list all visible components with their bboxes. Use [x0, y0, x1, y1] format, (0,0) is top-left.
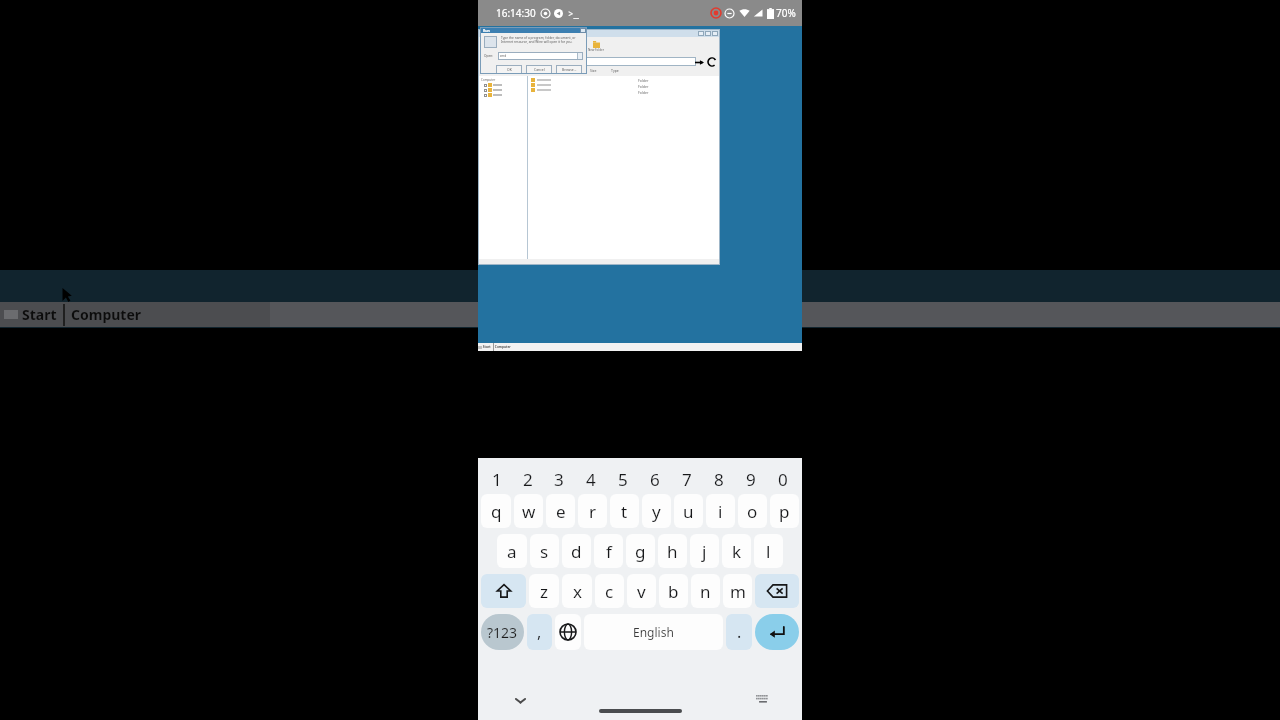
staticText: o — [747, 500, 758, 523]
staticText: Size — [590, 68, 597, 73]
staticText: Folder — [638, 78, 649, 83]
button[interactable]: Home — [599, 709, 682, 713]
staticText: Browse... — [562, 67, 577, 72]
staticText: Start — [482, 345, 491, 349]
staticText: m — [730, 580, 746, 603]
staticText: y — [652, 500, 661, 523]
button[interactable]: j — [690, 534, 719, 568]
staticText: 8 — [714, 468, 724, 491]
staticText: English — [633, 624, 674, 640]
staticText: 16:14:30 — [496, 6, 536, 20]
button[interactable]: h — [658, 534, 687, 568]
button[interactable]: Enter — [755, 614, 799, 650]
staticText: d — [571, 540, 582, 563]
button[interactable]: g — [626, 534, 655, 568]
button[interactable]: Shift — [481, 574, 526, 608]
button[interactable]: l — [754, 534, 783, 568]
button[interactable]: OK — [496, 65, 522, 74]
button[interactable]: a — [497, 534, 527, 568]
staticText: Open: — [484, 54, 494, 58]
staticText: n — [700, 580, 711, 603]
button[interactable]: Backspace — [755, 574, 799, 608]
staticText: Start — [22, 305, 57, 324]
staticText: Type — [611, 68, 619, 73]
staticText: ?123 — [487, 623, 518, 642]
button[interactable]: 4 — [575, 466, 607, 492]
button[interactable]: 3 — [543, 466, 575, 492]
staticText: 4 — [586, 468, 596, 491]
button[interactable]: 2 — [512, 466, 543, 492]
button[interactable]: t — [610, 494, 639, 528]
button[interactable]: n — [691, 574, 720, 608]
staticText: New Folder — [588, 48, 604, 52]
button[interactable]: p — [770, 494, 799, 528]
button[interactable]: , — [527, 614, 552, 650]
button[interactable]: y — [642, 494, 671, 528]
button[interactable]: x — [562, 574, 592, 608]
button[interactable]: 1 — [481, 466, 512, 492]
staticText: r — [589, 500, 597, 523]
button[interactable]: English — [584, 614, 723, 650]
staticText: p — [779, 500, 790, 523]
staticText: q — [491, 500, 502, 523]
button[interactable]: m — [723, 574, 752, 608]
staticText: a — [507, 540, 517, 563]
button[interactable]: Cancel — [526, 65, 552, 74]
staticText: w — [522, 500, 536, 523]
staticText: c — [605, 580, 614, 603]
staticText: g — [635, 540, 646, 563]
button[interactable]: 6 — [639, 466, 671, 492]
button[interactable]: f — [594, 534, 623, 568]
button[interactable]: s — [530, 534, 559, 568]
button[interactable]: k — [722, 534, 751, 568]
button[interactable]: i — [706, 494, 735, 528]
staticText: j — [702, 540, 707, 563]
staticText: 9 — [746, 468, 756, 491]
staticText: . — [737, 621, 742, 643]
button[interactable]: . — [726, 614, 752, 650]
staticText: i — [718, 500, 723, 523]
staticText: Computer — [71, 305, 142, 324]
staticText: z — [540, 580, 548, 603]
button[interactable]: Change language — [555, 614, 581, 650]
staticText: t — [621, 500, 628, 523]
staticText: 5 — [618, 468, 628, 491]
button[interactable]: ?123 — [481, 614, 524, 650]
button[interactable]: b — [659, 574, 688, 608]
staticText: Computer — [481, 78, 496, 82]
button[interactable]: c — [595, 574, 624, 608]
staticText: Cancel — [534, 67, 545, 72]
staticText: 6 — [650, 468, 660, 491]
staticText: u — [683, 500, 694, 523]
staticText: 2 — [523, 468, 533, 491]
button[interactable]: Browse... — [556, 65, 582, 74]
staticText: 0 — [778, 468, 788, 491]
button[interactable]: Switch keyboard — [750, 687, 776, 713]
staticText: 1 — [492, 468, 502, 491]
staticText: 70% — [776, 6, 796, 20]
staticText: b — [668, 580, 679, 603]
button[interactable]: 8 — [703, 466, 735, 492]
button[interactable]: 7 — [671, 466, 703, 492]
button[interactable]: w — [514, 494, 543, 528]
button[interactable]: o — [738, 494, 767, 528]
button[interactable]: 5 — [607, 466, 639, 492]
staticText: Folder — [638, 90, 649, 95]
button[interactable]: d — [562, 534, 591, 568]
staticText: cmd — [498, 54, 507, 58]
button[interactable]: 0 — [767, 466, 799, 492]
staticText: x — [573, 580, 582, 603]
staticText: Run — [483, 28, 490, 33]
staticText: , — [537, 621, 542, 643]
staticText: Internet resource, and Wine will open it… — [501, 40, 573, 44]
button[interactable]: q — [481, 494, 511, 528]
button[interactable]: 9 — [735, 466, 767, 492]
button[interactable]: r — [578, 494, 607, 528]
button[interactable]: u — [674, 494, 703, 528]
staticText: h — [667, 540, 678, 563]
staticText: Type the name of a program, folder, docu… — [501, 36, 576, 40]
button[interactable]: z — [529, 574, 559, 608]
button[interactable]: Close keyboard — [506, 686, 534, 714]
button[interactable]: v — [627, 574, 656, 608]
button[interactable]: e — [546, 494, 575, 528]
